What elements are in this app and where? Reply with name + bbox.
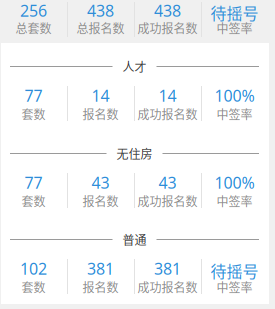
staticText: 14 [91,85,109,106]
button[interactable]: 14 [67,0,134,44]
staticText: 100% [214,85,254,106]
button[interactable]: 438 [134,0,201,44]
staticText: 438 [154,0,181,21]
staticText: 成功报名数 [137,105,197,123]
staticText: 无住房 [116,145,152,162]
staticText: 普通 [122,231,146,248]
staticText: 77 [24,85,42,106]
staticText: 中签率 [216,19,252,37]
button[interactable]: 43 [67,0,134,44]
staticText: 人才 [122,58,146,75]
button[interactable]: 381 [67,0,134,44]
staticText: 43 [158,172,176,193]
staticText: 438 [87,0,114,21]
staticText: 381 [154,258,181,279]
staticText: 成功报名数 [137,19,197,37]
staticText: 中签率 [216,192,252,210]
button[interactable]: 77 [0,0,67,44]
staticText: 256 [20,0,47,21]
button[interactable]: 102 [0,0,67,44]
button[interactable]: 待摇号 [201,0,268,44]
button[interactable]: 77 [0,0,67,44]
staticText: 套数 [21,278,45,296]
button[interactable]: 256 [0,0,67,44]
staticText: 总报名数 [76,19,124,37]
button[interactable]: 待摇号 [201,0,268,44]
staticText: 102 [20,258,47,279]
staticText: 成功报名数 [137,192,197,210]
button[interactable]: 438 [67,0,134,44]
staticText: 套数 [21,192,45,210]
staticText: 待摇号 [210,259,258,282]
staticText: 待摇号 [210,1,258,24]
staticText: 报名数 [82,105,118,123]
button[interactable]: 43 [134,0,201,44]
staticText: 报名数 [82,192,118,210]
staticText: 14 [158,85,176,106]
button[interactable]: 14 [134,0,201,44]
staticText: 中签率 [216,278,252,296]
staticText: 77 [24,172,42,193]
button[interactable]: 381 [134,0,201,44]
staticText: 成功报名数 [137,278,197,296]
button[interactable]: 100% [201,0,268,44]
staticText: 381 [87,258,114,279]
staticText: 100% [214,172,254,193]
staticText: 套数 [21,105,45,123]
staticText: 报名数 [82,278,118,296]
staticText: 43 [91,172,109,193]
staticText: 中签率 [216,105,252,123]
staticText: 总套数 [15,19,51,37]
button[interactable]: 100% [201,0,268,44]
